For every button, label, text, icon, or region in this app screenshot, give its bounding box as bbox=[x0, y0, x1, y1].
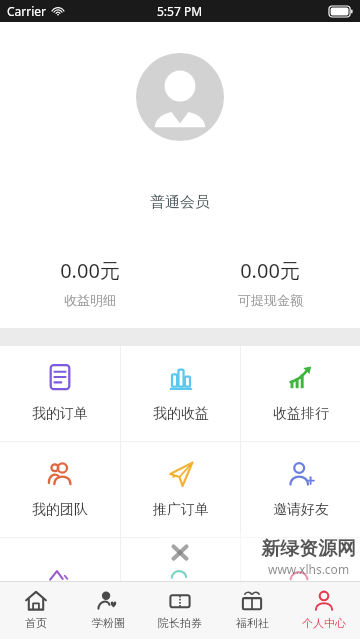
staticText: 可提现金额 bbox=[238, 292, 303, 308]
staticText: Carrier bbox=[7, 3, 47, 19]
staticText: 0.00元 bbox=[240, 257, 300, 284]
button[interactable]: 收益排行 bbox=[241, 346, 360, 441]
staticText: 5:57 PM bbox=[157, 3, 203, 19]
button[interactable]: 我的订单 bbox=[0, 346, 120, 441]
button[interactable]: Menu item bbox=[241, 538, 360, 581]
staticText: 我的收益 bbox=[153, 405, 209, 423]
staticText: 院长拍券 bbox=[158, 616, 202, 630]
staticText: 普通会员 bbox=[150, 193, 210, 212]
button[interactable]: 0.00元 bbox=[180, 255, 360, 310]
button[interactable]: 首页 bbox=[0, 582, 72, 639]
button[interactable]: 个人中心 bbox=[288, 582, 360, 639]
staticText: 个人中心 bbox=[302, 616, 346, 630]
staticText: 我的订单 bbox=[32, 405, 88, 423]
button[interactable]: Menu item bbox=[0, 538, 120, 581]
staticText: 福利社 bbox=[236, 616, 269, 630]
staticText: 邀请好友 bbox=[273, 501, 329, 519]
staticText: 学粉圈 bbox=[92, 616, 125, 630]
button[interactable]: 院长拍券 bbox=[144, 582, 216, 639]
staticText: 新绿资源网 bbox=[261, 537, 356, 561]
staticText: 首页 bbox=[25, 616, 47, 630]
button[interactable]: 学粉圈 bbox=[72, 582, 144, 639]
staticText: 0.00元 bbox=[60, 257, 120, 284]
button[interactable]: 推广订单 bbox=[121, 442, 240, 537]
button[interactable]: 0.00元 bbox=[0, 255, 180, 310]
button[interactable]: 我的收益 bbox=[121, 346, 240, 441]
staticText: 收益排行 bbox=[273, 405, 329, 423]
staticText: 推广订单 bbox=[153, 501, 209, 519]
staticText: www.xlhs.com bbox=[268, 561, 350, 577]
button[interactable]: 我的团队 bbox=[0, 442, 120, 537]
button[interactable]: 福利社 bbox=[216, 582, 288, 639]
button[interactable]: Menu item bbox=[121, 538, 240, 581]
staticText: 收益明细 bbox=[64, 292, 116, 308]
staticText: 我的团队 bbox=[32, 501, 88, 519]
button[interactable]: Avatar bbox=[136, 53, 224, 141]
button[interactable]: 邀请好友 bbox=[241, 442, 360, 537]
